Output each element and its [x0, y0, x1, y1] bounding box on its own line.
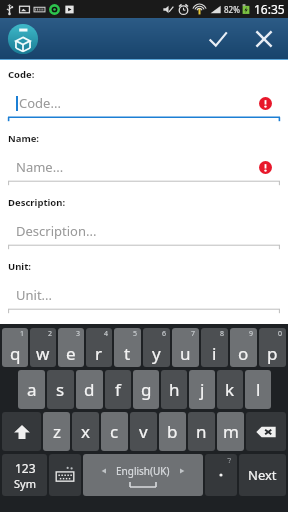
button[interactable]: Backspace: [246, 412, 286, 451]
button[interactable]: Unit...: [16, 282, 278, 308]
button[interactable]: 123: [2, 454, 47, 496]
staticText: Name...: [16, 158, 64, 176]
staticText: o: [238, 342, 249, 365]
staticText: p: [267, 342, 278, 365]
staticText: q: [10, 342, 21, 365]
staticText: g: [141, 378, 152, 401]
staticText: w: [36, 342, 50, 365]
button[interactable]: n: [188, 412, 215, 451]
button[interactable]: z: [43, 412, 70, 451]
staticText: ̈?: [228, 456, 232, 466]
staticText: z: [53, 420, 61, 443]
staticText: k: [225, 378, 235, 401]
button[interactable]: 0: [259, 328, 286, 367]
staticText: Unit...: [16, 286, 53, 304]
staticText: 0: [278, 329, 283, 339]
staticText: 82%: [224, 4, 240, 15]
staticText: 8: [220, 329, 225, 339]
button[interactable]: Shift: [2, 412, 41, 451]
staticText: Code:: [8, 68, 35, 81]
staticText: Name:: [8, 132, 40, 145]
staticText: a: [27, 378, 37, 401]
button[interactable]: Name...: [16, 154, 278, 180]
staticText: 3: [76, 329, 81, 339]
staticText: f: [115, 378, 121, 401]
button[interactable]: 5: [114, 328, 141, 367]
staticText: n: [196, 420, 207, 443]
staticText: 9: [249, 329, 254, 339]
staticText: 7: [191, 329, 196, 339]
staticText: English(UK): [116, 464, 170, 478]
button[interactable]: Code...: [16, 90, 278, 116]
staticText: Unit:: [8, 260, 31, 273]
button[interactable]: c: [101, 412, 128, 451]
button[interactable]: b: [159, 412, 186, 451]
button[interactable]: Description...: [16, 218, 278, 244]
button[interactable]: Next: [239, 454, 286, 496]
button[interactable]: m: [217, 412, 244, 451]
staticText: b: [167, 420, 178, 443]
staticText: c: [110, 420, 119, 443]
button[interactable]: 1: [2, 328, 28, 367]
staticText: j: [200, 378, 205, 401]
button[interactable]: 3: [58, 328, 84, 367]
staticText: 123: [15, 460, 36, 476]
staticText: Description:: [8, 196, 66, 209]
button[interactable]: Cancel: [240, 18, 288, 60]
staticText: Code...: [19, 94, 61, 112]
staticText: 6: [162, 329, 167, 339]
staticText: x: [81, 420, 90, 443]
button[interactable]: a: [18, 370, 45, 409]
button[interactable]: 8: [201, 328, 228, 367]
button[interactable]: d: [76, 370, 103, 409]
button[interactable]: j: [189, 370, 215, 409]
button[interactable]: k: [217, 370, 243, 409]
staticText: u: [180, 342, 191, 365]
staticText: y: [152, 342, 161, 365]
staticText: d: [84, 378, 95, 401]
staticText: t: [124, 342, 131, 365]
button[interactable]: Save: [196, 18, 240, 60]
staticText: m: [223, 420, 239, 443]
staticText: h: [169, 378, 180, 401]
button[interactable]: 2: [30, 328, 56, 367]
button[interactable]: v: [130, 412, 157, 451]
staticText: 16:35: [254, 1, 285, 17]
staticText: l: [256, 378, 261, 401]
button[interactable]: 4: [86, 328, 112, 367]
staticText: v: [139, 420, 148, 443]
staticText: i: [212, 342, 217, 365]
button[interactable]: 6: [143, 328, 170, 367]
staticText: 5: [133, 329, 138, 339]
button[interactable]: x: [72, 412, 99, 451]
button[interactable]: 9: [230, 328, 257, 367]
button[interactable]: Period: [205, 454, 237, 496]
staticText: Description...: [16, 222, 97, 240]
button[interactable]: f: [105, 370, 131, 409]
button[interactable]: g: [133, 370, 159, 409]
button[interactable]: h: [161, 370, 187, 409]
staticText: 2: [48, 329, 53, 339]
button[interactable]: s: [47, 370, 74, 409]
staticText: 4: [104, 329, 109, 339]
button[interactable]: l: [245, 370, 271, 409]
staticText: r: [95, 342, 103, 365]
button[interactable]: App icon: [7, 23, 39, 55]
button[interactable]: Change keyboard: [49, 454, 81, 496]
staticText: Sym: [14, 476, 36, 491]
button[interactable]: English(UK): [83, 454, 203, 496]
button[interactable]: 7: [172, 328, 199, 367]
staticText: Next: [248, 466, 277, 484]
staticText: e: [66, 342, 76, 365]
staticText: 1: [20, 329, 25, 339]
staticText: s: [56, 378, 65, 401]
